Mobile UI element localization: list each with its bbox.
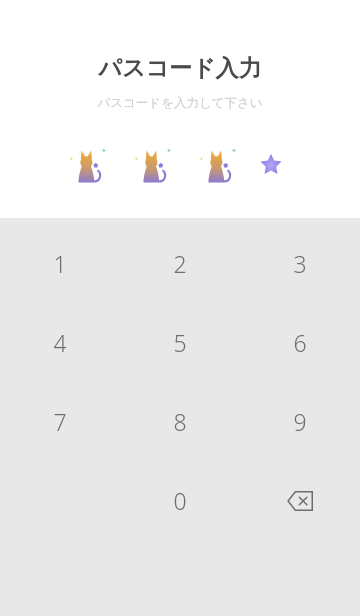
button[interactable]: 1 xyxy=(0,224,120,303)
button[interactable]: 4 xyxy=(0,303,120,382)
staticText: 4 xyxy=(53,327,67,358)
button[interactable]: 0 xyxy=(120,461,240,540)
staticText: 5 xyxy=(173,327,187,358)
button[interactable]: 5 xyxy=(120,303,240,382)
button[interactable]: 3 xyxy=(240,224,360,303)
staticText: 3 xyxy=(293,248,307,279)
staticText: 0 xyxy=(173,485,187,516)
button[interactable]: Backspace xyxy=(240,461,360,540)
staticText: 6 xyxy=(293,327,307,358)
button[interactable]: 9 xyxy=(240,382,360,461)
staticText: 1 xyxy=(53,248,67,279)
staticText: パスコードを入力して下さい xyxy=(97,95,263,111)
staticText: 7 xyxy=(53,406,67,437)
staticText: 9 xyxy=(293,406,307,437)
button[interactable]: 8 xyxy=(120,382,240,461)
staticText: 2 xyxy=(173,248,187,279)
button[interactable]: 7 xyxy=(0,382,120,461)
staticText: パスコード入力 xyxy=(98,54,262,83)
button[interactable]: 6 xyxy=(240,303,360,382)
staticText: 8 xyxy=(173,406,187,437)
button[interactable]: 2 xyxy=(120,224,240,303)
